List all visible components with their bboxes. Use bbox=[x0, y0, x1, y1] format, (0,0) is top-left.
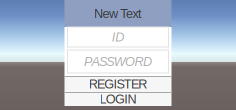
staticText: PASSWORD bbox=[84, 54, 152, 69]
staticText: LOGIN bbox=[100, 92, 136, 106]
staticText: ID bbox=[112, 30, 124, 44]
staticText: New Text bbox=[94, 6, 142, 21]
button[interactable]: LOGIN bbox=[64, 92, 171, 106]
button[interactable]: REGISTER bbox=[64, 76, 171, 92]
staticText: REGISTER bbox=[89, 77, 147, 91]
